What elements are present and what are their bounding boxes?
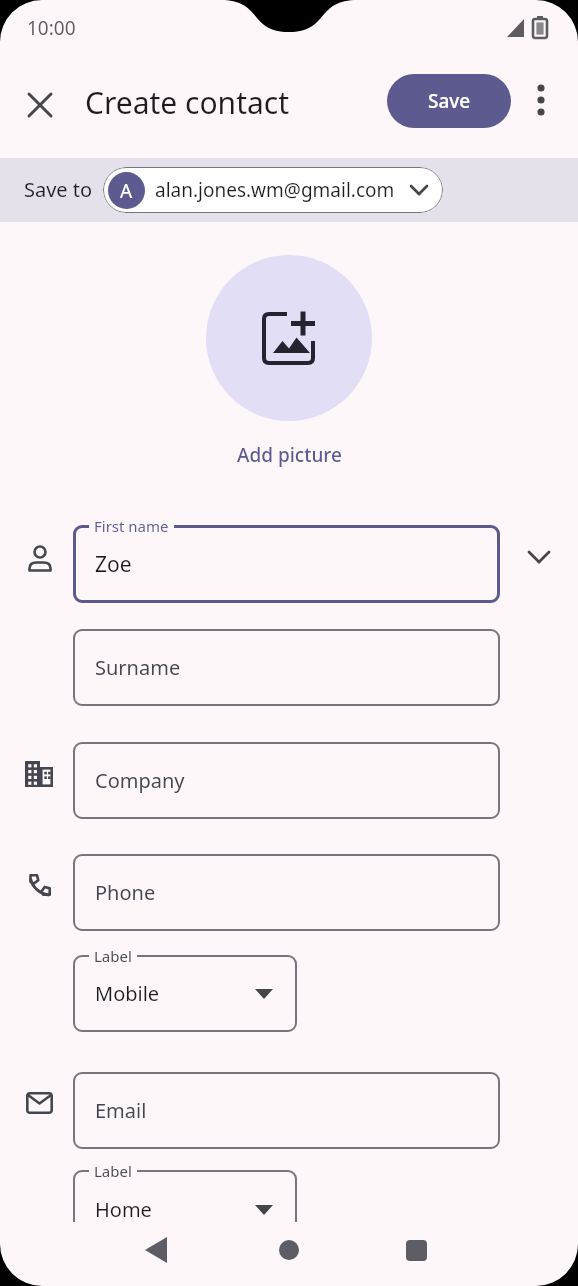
button[interactable]: Add picture: [189, 441, 389, 469]
button[interactable]: [73, 742, 500, 819]
staticText: Save to: [24, 176, 93, 203]
button[interactable]: [73, 629, 500, 706]
button[interactable]: [120, 1224, 192, 1276]
button[interactable]: [73, 1170, 297, 1247]
staticText: Zoe: [95, 550, 132, 579]
button[interactable]: [380, 1224, 452, 1276]
button[interactable]: [16, 81, 64, 129]
button[interactable]: A: [103, 167, 443, 213]
button[interactable]: [73, 525, 500, 603]
button[interactable]: [73, 1072, 500, 1149]
staticText: Label: [94, 1161, 132, 1181]
staticText: Home: [95, 1196, 152, 1223]
button[interactable]: [519, 78, 563, 122]
staticText: Email: [95, 1097, 147, 1124]
staticText: 10:00: [27, 15, 76, 41]
staticText: Phone: [95, 879, 156, 906]
button[interactable]: [73, 854, 500, 931]
staticText: Mobile: [95, 980, 160, 1007]
staticText: Company: [95, 767, 185, 794]
button[interactable]: Save: [387, 74, 511, 128]
button[interactable]: [206, 255, 372, 421]
staticText: alan.jones.wm@gmail.com: [155, 177, 395, 203]
button[interactable]: [73, 955, 297, 1032]
staticText: First name: [94, 516, 169, 536]
staticText: Label: [94, 946, 132, 966]
staticText: Add picture: [237, 442, 342, 468]
button[interactable]: [253, 1224, 325, 1276]
staticText: Create contact: [85, 82, 290, 123]
staticText: Surname: [95, 654, 181, 681]
staticText: Save: [428, 88, 471, 114]
staticText: A: [120, 178, 133, 204]
